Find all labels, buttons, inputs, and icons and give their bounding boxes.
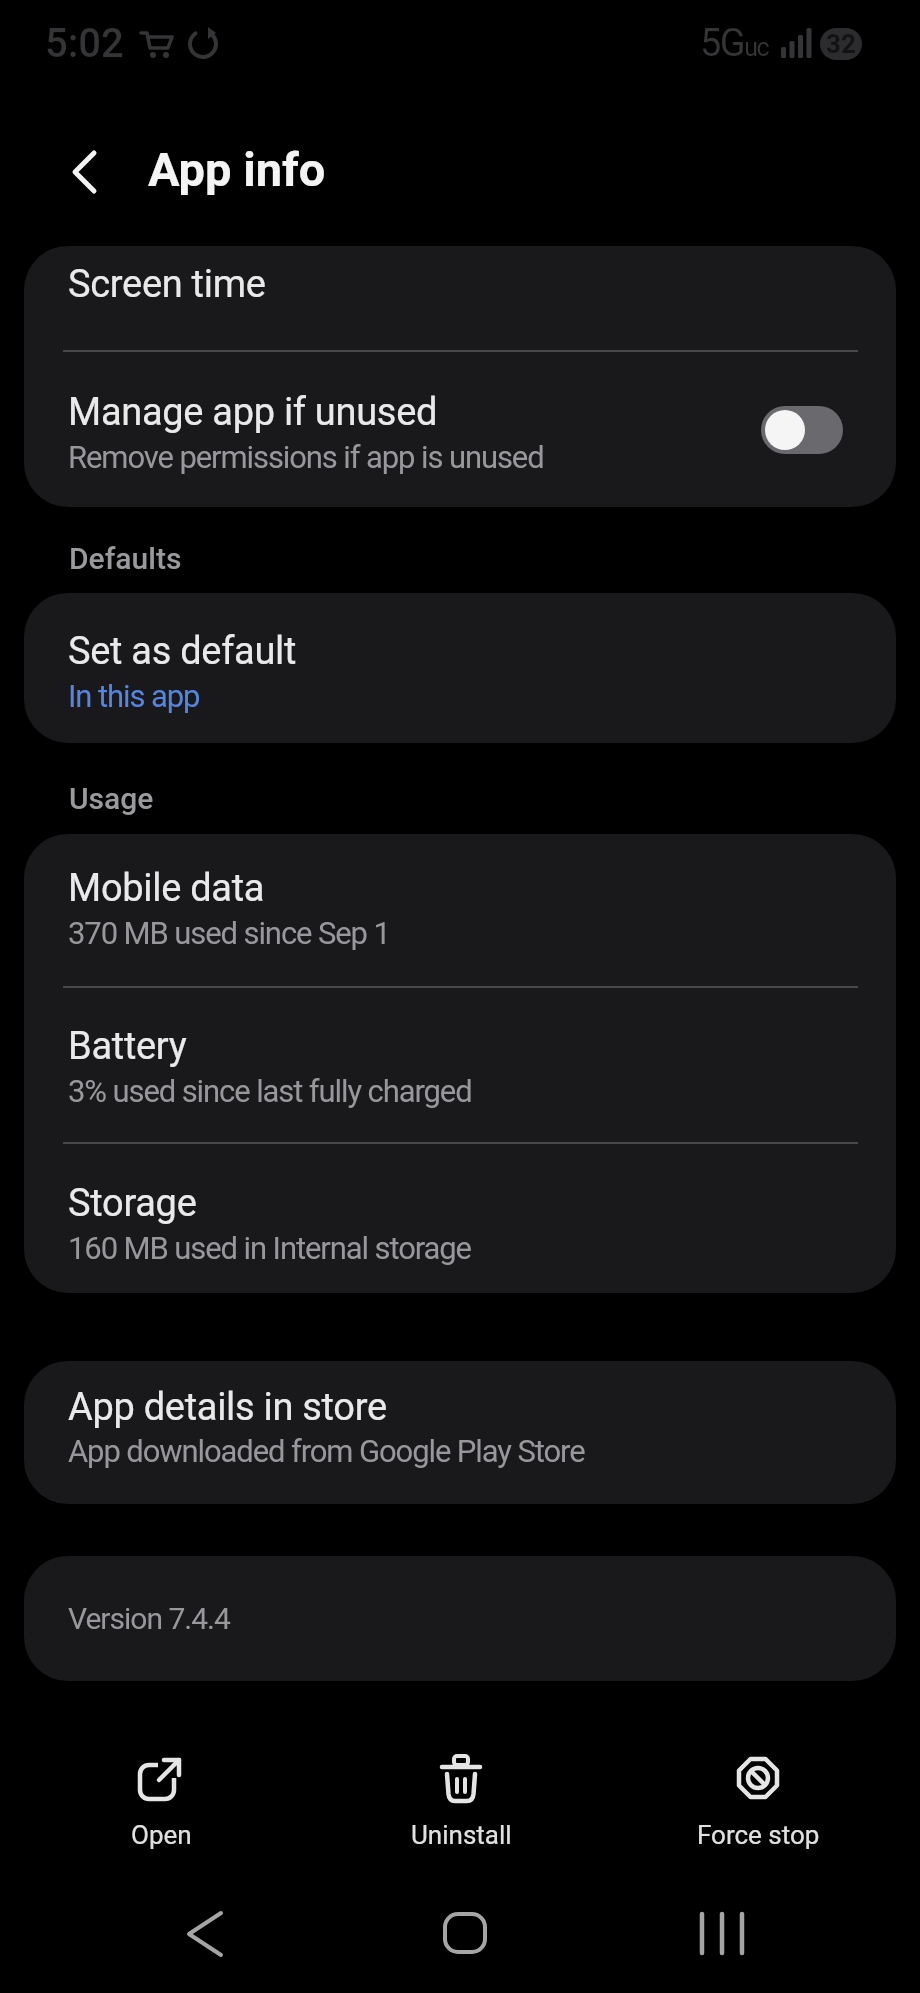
button[interactable]: Set as default <box>24 593 896 743</box>
staticText: 32 <box>826 29 856 59</box>
staticText: Remove permissions if app is unused <box>68 439 544 475</box>
button[interactable]: Manage app if unused <box>24 352 896 507</box>
staticText: Mobile data <box>68 866 265 911</box>
button[interactable]: Battery <box>24 988 896 1142</box>
staticText: 370 MB used since Sep 1 <box>68 915 390 951</box>
staticText: Force stop <box>697 1820 820 1850</box>
staticText: Defaults <box>69 541 182 576</box>
staticText: Battery <box>68 1024 187 1069</box>
staticText: Version 7.4.4 <box>68 1601 230 1636</box>
staticText: Screen time <box>68 262 266 307</box>
button[interactable] <box>64 151 106 193</box>
staticText: 160 MB used in Internal storage <box>68 1230 471 1266</box>
staticText: Set as default <box>68 629 297 674</box>
button[interactable]: Open <box>61 1754 261 1850</box>
staticText: 3% used since last fully charged <box>68 1073 472 1109</box>
button[interactable]: Storage <box>24 1144 896 1293</box>
staticText: Uninstall <box>411 1820 512 1850</box>
button[interactable] <box>443 1914 487 1954</box>
staticText: Open <box>131 1820 192 1850</box>
staticText: Usage <box>69 781 154 816</box>
button[interactable] <box>761 406 843 454</box>
staticText: 5:02 <box>45 20 124 67</box>
button[interactable]: Force stop <box>658 1754 858 1850</box>
button[interactable]: Screen time <box>24 246 896 350</box>
button[interactable]: App details in store <box>24 1361 896 1504</box>
staticText: 5Guc <box>700 21 769 66</box>
staticText: App downloaded from Google Play Store <box>68 1433 585 1469</box>
staticText: App info <box>148 142 326 197</box>
button[interactable]: Mobile data <box>24 834 896 986</box>
button[interactable] <box>700 1914 744 1954</box>
button[interactable] <box>184 1912 228 1956</box>
staticText: App details in store <box>68 1385 387 1430</box>
staticText: Storage <box>68 1181 197 1226</box>
staticText: Manage app if unused <box>68 390 438 435</box>
button[interactable]: Uninstall <box>361 1754 561 1850</box>
staticText: In this app <box>68 678 200 714</box>
